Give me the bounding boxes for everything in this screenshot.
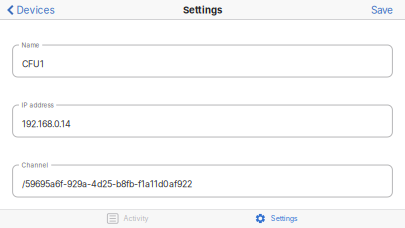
staticText: CFU1 [22,59,44,69]
button[interactable]: Settings [245,210,308,227]
button[interactable]: Activity [97,210,158,227]
staticText: 192.168.0.14 [22,119,71,129]
staticText: Save [371,4,393,16]
button[interactable]: CFU1 [13,45,392,77]
staticText: Activity [123,214,148,223]
staticText: Settings [183,4,222,16]
staticText: Settings [271,214,298,223]
staticText: Devices [16,4,54,16]
staticText: Name [22,41,40,49]
button[interactable]: Devices [0,1,60,19]
button[interactable]: Save [365,1,405,19]
button[interactable]: 192.168.0.14 [13,105,392,137]
staticText: Channel [22,161,49,169]
staticText: /59695a6f-929a-4d25-b8fb-f1a11d0af922 [22,179,192,189]
button[interactable]: /59695a6f-929a-4d25-b8fb-f1a11d0af922 [13,165,392,197]
staticText: IP address [22,101,54,109]
